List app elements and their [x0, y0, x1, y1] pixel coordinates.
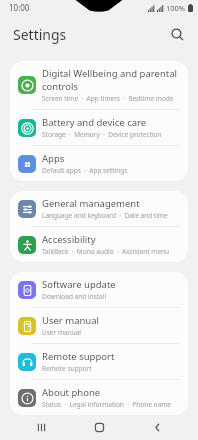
staticText: Download and install: [42, 292, 107, 301]
button[interactable]: Back: [140, 415, 174, 440]
staticText: User manual: [42, 314, 99, 327]
staticText: Battery and device care: [42, 116, 147, 129]
staticText: Storage · Memory · Device protection: [42, 130, 162, 139]
button[interactable]: Accessibility: [10, 227, 188, 262]
staticText: Digital Wellbeing and parental controls: [42, 67, 180, 93]
button[interactable]: Software update: [10, 272, 188, 307]
staticText: About phone: [42, 386, 101, 399]
staticText: General management: [42, 197, 140, 210]
button[interactable]: Home: [82, 415, 116, 440]
staticText: Status · Legal information · Phone name: [42, 400, 172, 409]
button[interactable]: General management: [10, 191, 188, 226]
button[interactable]: Battery and device care: [10, 110, 188, 145]
staticText: Apps: [42, 152, 65, 165]
button[interactable]: Apps: [10, 146, 188, 181]
button[interactable]: Recents: [24, 415, 58, 440]
staticText: 100%: [166, 3, 186, 13]
staticText: Remote support: [42, 350, 115, 363]
staticText: TalkBack · Mono audio · Assistant menu: [42, 247, 170, 256]
staticText: User manual: [42, 328, 81, 337]
staticText: Default apps · App settings: [42, 166, 128, 175]
staticText: Remote support: [42, 364, 92, 373]
staticText: Accessibility: [42, 233, 96, 246]
staticText: Software update: [42, 278, 116, 291]
staticText: 10:00: [9, 2, 30, 13]
button[interactable]: Digital Wellbeing and parental controls: [10, 61, 188, 109]
staticText: Language and keyboard · Date and time: [42, 211, 168, 220]
button[interactable]: Remote support: [10, 344, 188, 379]
button[interactable]: User manual: [10, 308, 188, 343]
staticText: Settings: [13, 25, 67, 44]
button[interactable]: Search: [164, 21, 190, 47]
button[interactable]: About phone: [10, 380, 188, 415]
staticText: Screen time · App timers · Bedtime mode: [42, 94, 174, 103]
